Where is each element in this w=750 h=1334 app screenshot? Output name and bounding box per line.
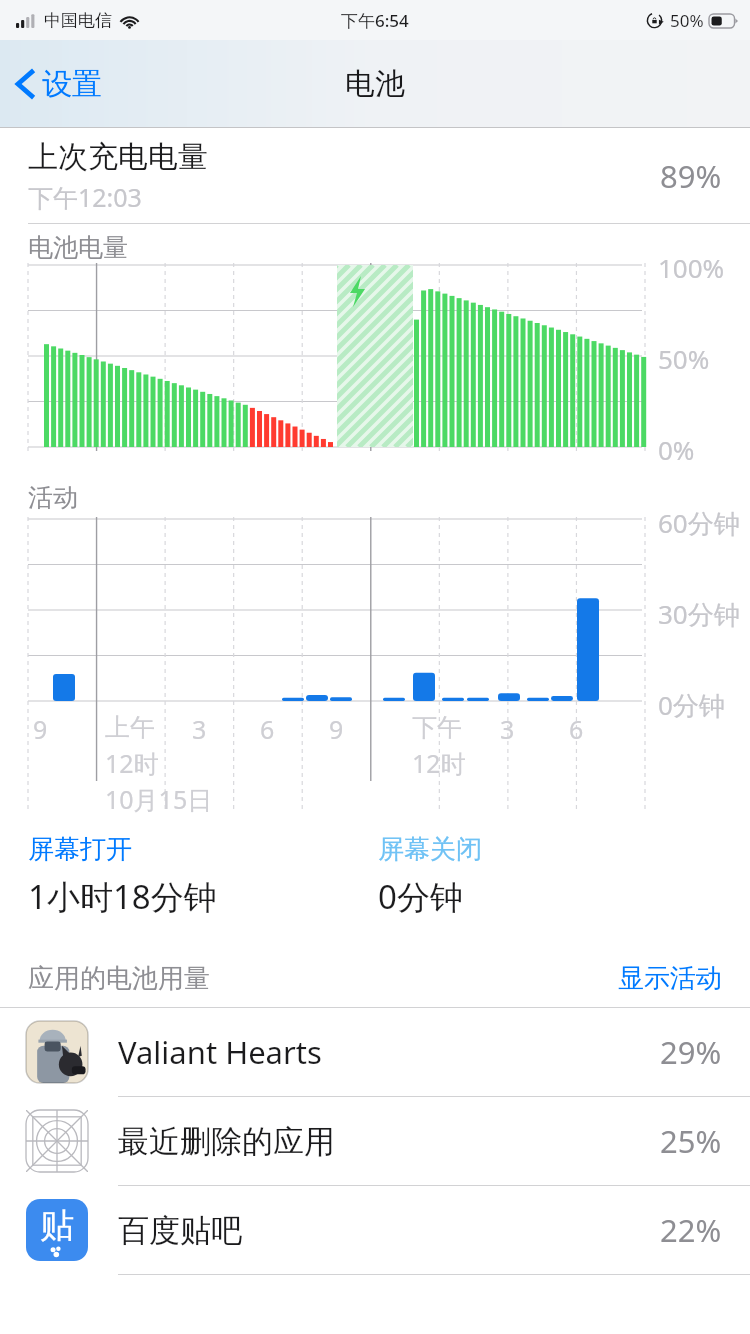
- staticText: 1小时18分钟: [28, 874, 217, 919]
- button[interactable]: 屏幕打开: [28, 833, 217, 919]
- staticText: 22%: [660, 1209, 722, 1251]
- staticText: 60分钟: [658, 505, 740, 541]
- staticText: 3: [500, 712, 515, 746]
- staticText: 12时: [412, 746, 466, 780]
- staticText: 最近删除的应用: [118, 1122, 335, 1161]
- button[interactable]: 上次充电电量: [0, 128, 750, 223]
- staticText: 下午6:54: [341, 9, 409, 32]
- staticText: 89%: [660, 155, 722, 197]
- button[interactable]: 屏幕关闭: [378, 833, 482, 919]
- staticText: Valiant Hearts: [118, 1031, 322, 1073]
- staticText: 50%: [670, 9, 704, 32]
- staticText: 6: [260, 712, 275, 746]
- button[interactable]: 返回: [10, 59, 108, 109]
- button[interactable]: 显示活动: [590, 956, 750, 1001]
- staticText: 6: [569, 712, 584, 746]
- staticText: 0分钟: [378, 874, 463, 919]
- staticText: 中国电信: [44, 10, 112, 31]
- staticText: 30分钟: [658, 596, 740, 632]
- staticText: 上午: [105, 712, 155, 743]
- staticText: 12时: [105, 746, 159, 780]
- button[interactable]: Valiant Hearts: [0, 1008, 750, 1096]
- staticText: 29%: [660, 1031, 722, 1073]
- staticText: 电池: [345, 65, 405, 103]
- staticText: 0分钟: [658, 687, 725, 723]
- staticText: 显示活动: [618, 962, 722, 995]
- staticText: 100%: [658, 250, 725, 285]
- staticText: 下午12:03: [28, 180, 142, 214]
- staticText: 9: [33, 712, 48, 746]
- staticText: 屏幕关闭: [378, 833, 482, 866]
- staticText: 百度贴吧: [118, 1211, 242, 1250]
- staticText: 贴: [40, 1204, 74, 1247]
- staticText: 上次充电电量: [28, 138, 208, 176]
- staticText: 0%: [658, 432, 695, 467]
- staticText: 9: [329, 712, 344, 746]
- staticText: 应用的电池用量: [28, 962, 210, 995]
- staticText: 活动: [28, 482, 78, 513]
- other: 返回: [16, 67, 36, 101]
- button[interactable]: 最近删除的应用: [0, 1097, 750, 1185]
- staticText: 25%: [660, 1120, 722, 1162]
- staticText: 10月15日: [105, 782, 213, 816]
- staticText: 3: [192, 712, 207, 746]
- staticText: 屏幕打开: [28, 833, 132, 866]
- staticText: 下午: [412, 712, 462, 743]
- staticText: 电池电量: [28, 232, 128, 263]
- button[interactable]: 贴: [0, 1186, 750, 1274]
- staticText: 设置: [42, 65, 102, 103]
- staticText: 50%: [658, 341, 710, 376]
